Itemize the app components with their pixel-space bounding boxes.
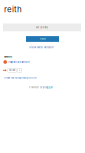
button[interactable]: View my complete profile xyxy=(4,76,36,79)
staticText: Blogger xyxy=(43,86,53,89)
button[interactable]: Hapzilla Pantoni xyxy=(8,60,30,64)
staticText: Home xyxy=(39,38,45,40)
button[interactable]: Follower count xyxy=(17,68,22,72)
staticText: Powered by xyxy=(29,86,42,89)
button[interactable]: Follow xyxy=(8,68,16,72)
staticText: No posts. xyxy=(35,26,48,29)
button[interactable]: Blogger xyxy=(43,86,53,89)
staticText: View my complete profile xyxy=(4,76,36,79)
staticText: About me xyxy=(4,56,12,58)
staticText: reith xyxy=(4,4,22,14)
staticText: Follow xyxy=(9,69,16,72)
button[interactable]: View web version xyxy=(29,46,54,49)
button[interactable]: Home xyxy=(26,36,59,42)
staticText: Hapzilla Pantoni xyxy=(8,60,30,64)
staticText: View web version xyxy=(29,46,54,49)
